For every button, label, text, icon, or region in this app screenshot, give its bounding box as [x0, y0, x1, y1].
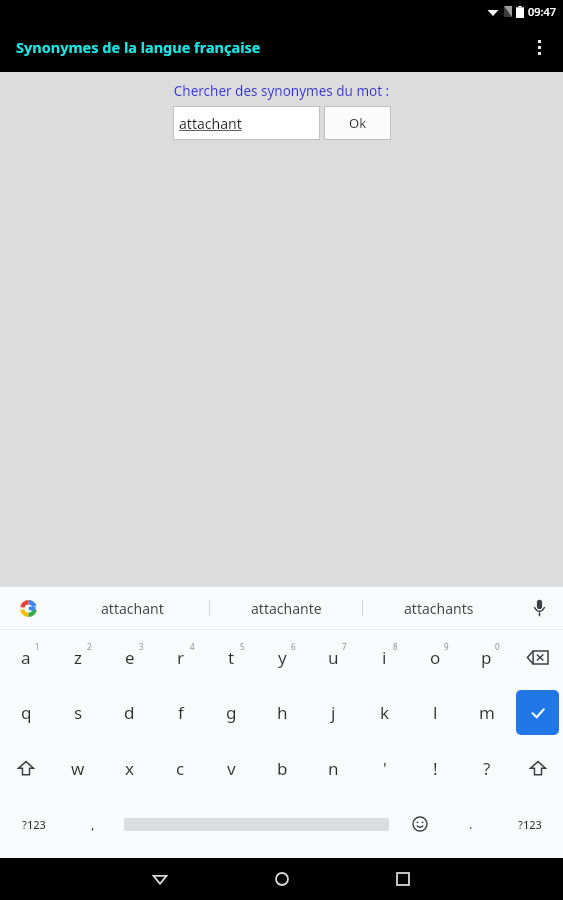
button[interactable]: Enter — [516, 690, 559, 735]
staticText: i — [382, 646, 387, 669]
staticText: r — [177, 646, 185, 669]
button[interactable]: z — [52, 630, 104, 685]
button[interactable]: p — [461, 630, 512, 685]
button[interactable]: i — [359, 630, 410, 685]
button[interactable]: ' — [359, 740, 410, 796]
button[interactable]: , — [67, 796, 118, 852]
staticText: . — [469, 815, 473, 833]
staticText: g — [226, 701, 237, 724]
staticText: attachants — [404, 599, 474, 618]
staticText: s — [74, 701, 83, 724]
button[interactable]: More options — [515, 23, 563, 71]
button[interactable]: Shift — [0, 740, 52, 796]
staticText: attachant — [101, 599, 164, 618]
staticText: Chercher des synonymes du mot : — [0, 82, 563, 100]
button[interactable]: x — [104, 740, 155, 796]
button[interactable]: w — [52, 740, 104, 796]
staticText: p — [481, 646, 492, 669]
staticText: 3 — [139, 641, 144, 652]
button[interactable]: Voice input — [515, 587, 563, 629]
staticText: x — [125, 757, 134, 780]
staticText: f — [178, 701, 184, 724]
staticText: a — [21, 646, 31, 669]
button[interactable]: f — [155, 685, 206, 740]
staticText: ' — [383, 757, 387, 780]
button[interactable]: q — [0, 685, 52, 740]
button[interactable]: g — [206, 685, 257, 740]
button[interactable]: r — [155, 630, 206, 685]
button[interactable]: d — [104, 685, 155, 740]
button[interactable]: a — [0, 630, 52, 685]
button[interactable]: c — [155, 740, 206, 796]
button[interactable]: y — [257, 630, 308, 685]
staticText: 7 — [342, 641, 347, 652]
staticText: e — [125, 646, 135, 669]
staticText: Synonymes de la langue française — [16, 37, 261, 57]
staticText: j — [331, 701, 336, 724]
staticText: ? — [483, 757, 491, 780]
button[interactable]: Google — [0, 587, 56, 629]
button[interactable]: j — [308, 685, 359, 740]
button[interactable]: o — [410, 630, 461, 685]
staticText: ?123 — [22, 817, 46, 832]
staticText: 09:47 — [528, 4, 557, 19]
staticText: ?123 — [518, 817, 542, 832]
button[interactable]: Ok — [324, 106, 391, 140]
button[interactable]: attachant — [173, 106, 320, 140]
button[interactable]: Emoji — [394, 796, 445, 852]
button[interactable]: Back — [138, 858, 182, 900]
staticText: 8 — [393, 641, 398, 652]
button[interactable]: ?123 — [496, 796, 563, 852]
button[interactable]: k — [359, 685, 410, 740]
staticText: y — [278, 646, 287, 669]
staticText: 4 — [190, 641, 195, 652]
button[interactable]: ! — [410, 740, 461, 796]
button[interactable]: m — [461, 685, 512, 740]
staticText: q — [21, 701, 32, 724]
other: Wifi — [487, 6, 499, 18]
staticText: Ok — [349, 114, 367, 132]
button[interactable]: Space — [118, 796, 394, 852]
staticText: 1 — [35, 641, 40, 652]
staticText: b — [277, 757, 288, 780]
button[interactable]: n — [308, 740, 359, 796]
button[interactable]: Shift — [512, 740, 563, 796]
staticText: 0 — [495, 641, 500, 652]
button[interactable]: u — [308, 630, 359, 685]
staticText: k — [380, 701, 390, 724]
staticText: ! — [433, 757, 438, 780]
button[interactable]: v — [206, 740, 257, 796]
button[interactable]: l — [410, 685, 461, 740]
button[interactable]: attachants — [363, 587, 515, 629]
button[interactable]: ? — [461, 740, 512, 796]
staticText: d — [124, 701, 135, 724]
staticText: h — [277, 701, 288, 724]
staticText: c — [176, 757, 185, 780]
button[interactable]: b — [257, 740, 308, 796]
button[interactable]: attachante — [210, 587, 362, 629]
button[interactable]: attachant — [56, 587, 209, 629]
staticText: z — [74, 646, 82, 669]
staticText: u — [328, 646, 339, 669]
button[interactable]: Recents — [381, 858, 425, 900]
staticText: 6 — [291, 641, 296, 652]
staticText: n — [328, 757, 339, 780]
button[interactable]: t — [206, 630, 257, 685]
button[interactable]: Home — [260, 858, 304, 900]
staticText: attachant — [179, 114, 242, 133]
staticText: l — [433, 701, 438, 724]
staticText: o — [430, 646, 441, 669]
staticText: w — [71, 757, 85, 780]
button[interactable]: h — [257, 685, 308, 740]
button[interactable]: . — [445, 796, 496, 852]
button[interactable]: s — [52, 685, 104, 740]
staticText: t — [228, 646, 235, 669]
staticText: v — [227, 757, 236, 780]
staticText: 5 — [240, 641, 245, 652]
staticText: m — [479, 701, 495, 724]
button[interactable]: ?123 — [0, 796, 67, 852]
button[interactable]: e — [104, 630, 155, 685]
staticText: attachante — [251, 599, 322, 618]
button[interactable]: Backspace — [512, 630, 563, 685]
staticText: , — [91, 815, 95, 833]
